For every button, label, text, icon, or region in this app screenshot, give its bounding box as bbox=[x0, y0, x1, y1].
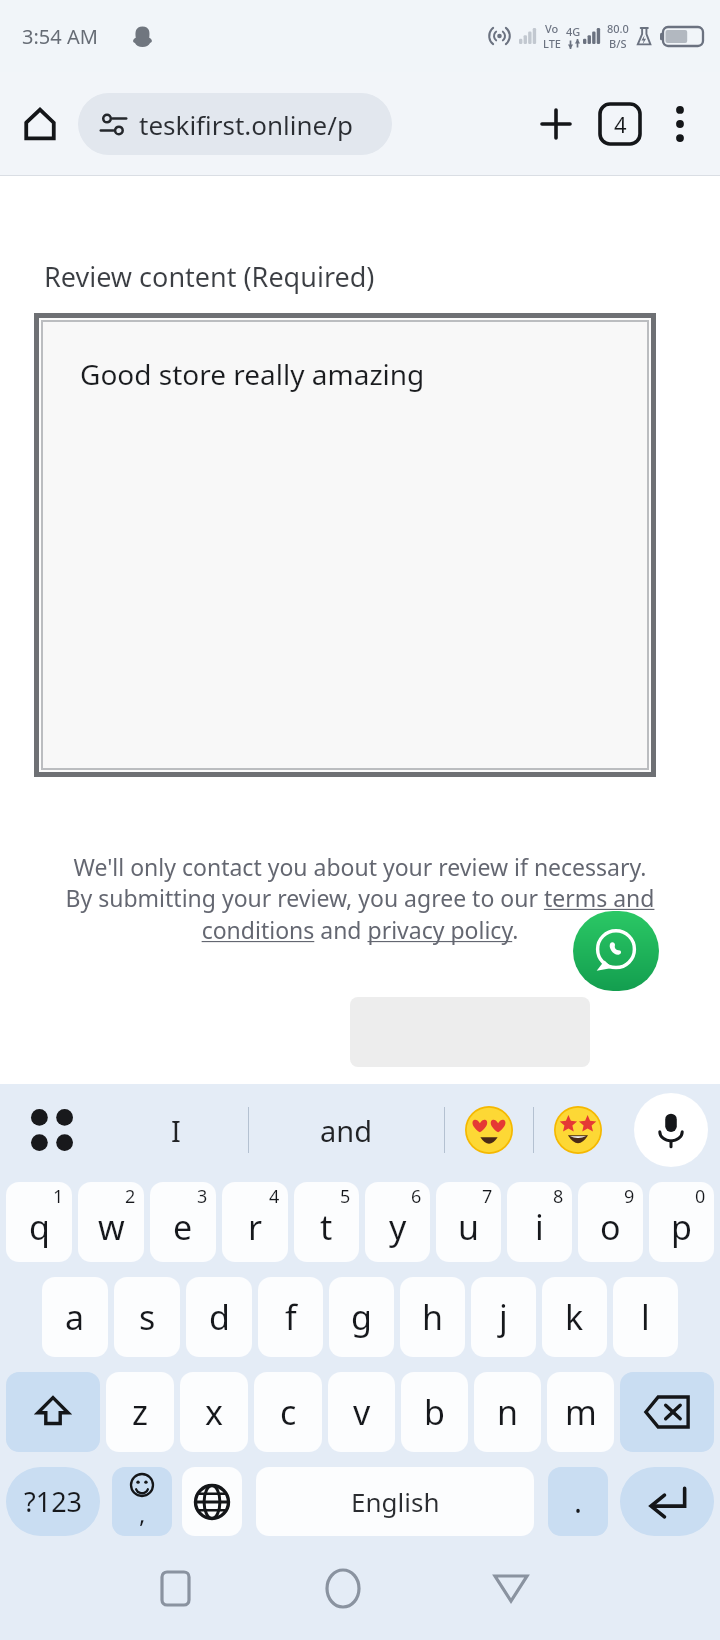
staticText: z bbox=[132, 1389, 148, 1435]
button[interactable]: m bbox=[547, 1372, 614, 1452]
button[interactable]: Shift bbox=[6, 1372, 100, 1452]
button[interactable]: ?123 bbox=[6, 1467, 100, 1536]
button[interactable]: We'll only contact you about your review… bbox=[62, 851, 658, 946]
button[interactable]: Chat on WhatsApp bbox=[573, 911, 659, 991]
staticText: p bbox=[671, 1204, 692, 1250]
button[interactable]: teskifirst.online/p bbox=[78, 93, 392, 155]
staticText: m bbox=[565, 1389, 597, 1435]
staticText: h bbox=[422, 1294, 444, 1340]
button[interactable]: l bbox=[613, 1277, 678, 1357]
staticText: 4 bbox=[269, 1184, 280, 1209]
staticText: v bbox=[353, 1389, 371, 1435]
staticText: 7 bbox=[482, 1184, 493, 1209]
button[interactable]: Keyboard menu bbox=[0, 1084, 104, 1176]
staticText: o bbox=[600, 1204, 621, 1250]
staticText: a bbox=[65, 1294, 85, 1340]
button[interactable]: g bbox=[329, 1277, 394, 1357]
button[interactable]: Voice input bbox=[634, 1093, 708, 1167]
staticText: f bbox=[285, 1294, 297, 1340]
staticText: 5 bbox=[340, 1184, 351, 1209]
staticText: 0 bbox=[695, 1184, 706, 1209]
staticText: Review content (Required) bbox=[44, 258, 375, 295]
staticText: 9 bbox=[624, 1184, 635, 1209]
button[interactable]: x bbox=[180, 1372, 248, 1452]
button[interactable]: Enter bbox=[620, 1467, 714, 1536]
staticText: w bbox=[98, 1204, 125, 1250]
button[interactable]: Back bbox=[472, 1549, 550, 1627]
staticText: 1 bbox=[53, 1184, 64, 1209]
button[interactable]: r bbox=[222, 1182, 288, 1262]
staticText: n bbox=[497, 1389, 519, 1435]
button[interactable]: y bbox=[365, 1182, 430, 1262]
staticText: 3:54 AM bbox=[22, 23, 98, 50]
button[interactable]: o bbox=[578, 1182, 643, 1262]
staticText: d bbox=[209, 1294, 230, 1340]
staticText: ?123 bbox=[24, 1483, 83, 1520]
staticText: 6 bbox=[411, 1184, 422, 1209]
button[interactable]: I bbox=[104, 1084, 248, 1176]
staticText: LTE bbox=[543, 36, 561, 51]
button[interactable]: New tab bbox=[528, 96, 584, 152]
staticText: 8 bbox=[553, 1184, 564, 1209]
button[interactable]: i bbox=[507, 1182, 572, 1262]
button[interactable]: Backspace bbox=[620, 1372, 714, 1452]
button[interactable]: Recent apps bbox=[136, 1549, 214, 1627]
button[interactable]: Heart eyes emoji bbox=[445, 1084, 533, 1176]
button[interactable]: h bbox=[400, 1277, 465, 1357]
staticText: y bbox=[389, 1204, 407, 1250]
staticText: 80.0 bbox=[607, 21, 629, 36]
button[interactable]: b bbox=[401, 1372, 468, 1452]
staticText: l bbox=[641, 1294, 650, 1340]
button[interactable]: j bbox=[471, 1277, 536, 1357]
button[interactable]: Star struck emoji bbox=[534, 1084, 622, 1176]
button[interactable]: e bbox=[150, 1182, 216, 1262]
button[interactable]: Change language bbox=[182, 1467, 242, 1536]
button[interactable]: Tabs, 4 open bbox=[592, 96, 648, 152]
staticText: t bbox=[320, 1204, 333, 1250]
staticText: 4G bbox=[566, 24, 581, 39]
staticText: e bbox=[173, 1204, 193, 1250]
button[interactable]: Emoji bbox=[112, 1467, 172, 1536]
staticText: c bbox=[280, 1389, 297, 1435]
staticText: x bbox=[205, 1389, 223, 1435]
button[interactable]: Home bbox=[304, 1549, 382, 1627]
staticText: English bbox=[351, 1484, 440, 1519]
staticText: teskifirst.online/p bbox=[139, 107, 353, 142]
staticText: b bbox=[424, 1389, 445, 1435]
button[interactable]: s bbox=[114, 1277, 180, 1357]
button[interactable]: Good store really amazing bbox=[43, 322, 647, 768]
button[interactable]: f bbox=[258, 1277, 323, 1357]
staticText: I bbox=[171, 1111, 181, 1150]
button[interactable]: n bbox=[474, 1372, 541, 1452]
button[interactable]: More options bbox=[652, 96, 708, 152]
button[interactable]: u bbox=[436, 1182, 501, 1262]
staticText: 4 bbox=[614, 109, 627, 139]
button[interactable]: q bbox=[6, 1182, 72, 1262]
button[interactable]: c bbox=[254, 1372, 322, 1452]
button[interactable]: Home bbox=[12, 96, 68, 152]
staticText: , bbox=[139, 1497, 146, 1530]
button[interactable]: w bbox=[78, 1182, 144, 1262]
staticText: Good store really amazing bbox=[80, 355, 425, 393]
staticText: and bbox=[320, 1111, 373, 1150]
button[interactable]: . bbox=[548, 1467, 608, 1536]
staticText: j bbox=[499, 1294, 508, 1340]
staticText: u bbox=[458, 1204, 480, 1250]
staticText: k bbox=[565, 1294, 584, 1340]
button[interactable]: d bbox=[186, 1277, 252, 1357]
staticText: B/S bbox=[609, 36, 627, 51]
staticText: s bbox=[139, 1294, 156, 1340]
staticText: g bbox=[351, 1294, 372, 1340]
staticText: 2 bbox=[125, 1184, 136, 1209]
staticText: i bbox=[535, 1204, 544, 1250]
button[interactable]: t bbox=[294, 1182, 359, 1262]
button[interactable]: English bbox=[256, 1467, 534, 1536]
button[interactable]: a bbox=[42, 1277, 108, 1357]
staticText: 3 bbox=[197, 1184, 208, 1209]
staticText: q bbox=[29, 1204, 50, 1250]
button[interactable]: k bbox=[542, 1277, 607, 1357]
button[interactable]: v bbox=[328, 1372, 395, 1452]
button[interactable]: p bbox=[649, 1182, 714, 1262]
button[interactable]: z bbox=[106, 1372, 174, 1452]
button[interactable]: and bbox=[249, 1084, 444, 1176]
